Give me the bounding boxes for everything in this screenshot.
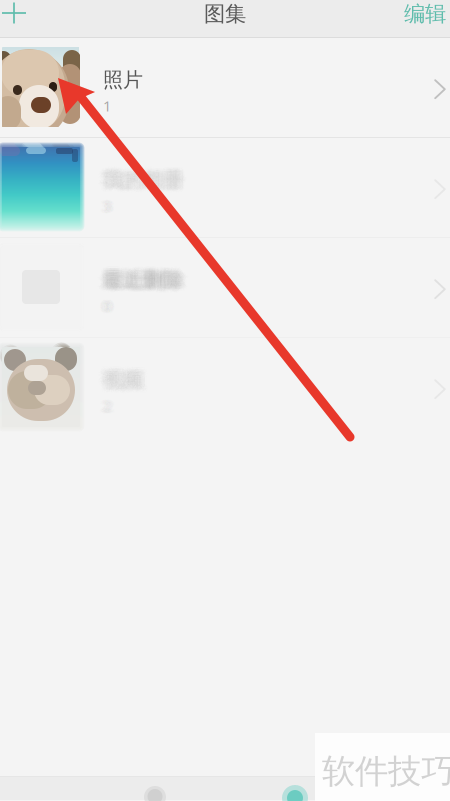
staticText: 最近删除 bbox=[110, 266, 190, 291]
staticText: 3 bbox=[102, 198, 110, 217]
staticText: 软件技巧 bbox=[322, 751, 450, 792]
staticText: 我的相册 bbox=[98, 171, 178, 196]
button[interactable]: 照片 bbox=[0, 38, 450, 137]
staticText: 2 bbox=[102, 396, 110, 415]
staticText: 最近删除 bbox=[108, 264, 188, 288]
staticText: 3 bbox=[106, 194, 114, 214]
staticText: 3 bbox=[100, 197, 108, 216]
staticText: 0 bbox=[99, 294, 107, 314]
staticText: 视频 bbox=[107, 371, 147, 396]
staticText: 0 bbox=[103, 294, 111, 314]
staticText: 视频 bbox=[104, 369, 144, 393]
staticText: 视频 bbox=[97, 363, 137, 388]
staticText: 3 bbox=[108, 197, 116, 216]
staticText: 2 bbox=[98, 395, 106, 415]
button[interactable]: New album bbox=[0, 0, 36, 38]
staticText: 2 bbox=[101, 393, 109, 413]
staticText: 我的相册 bbox=[96, 171, 176, 196]
staticText: 3 bbox=[108, 193, 116, 212]
staticText: 0 bbox=[101, 299, 109, 318]
staticText: 2 bbox=[108, 395, 116, 415]
button[interactable]: 编辑 bbox=[404, 0, 450, 38]
staticText: 视频 bbox=[112, 371, 152, 396]
staticText: 最近删除 bbox=[103, 269, 183, 293]
staticText: 3 bbox=[106, 193, 114, 212]
staticText: 视频 bbox=[112, 366, 152, 391]
staticText: 0 bbox=[105, 297, 113, 316]
staticText: 2 bbox=[97, 394, 105, 414]
staticText: 视频 bbox=[110, 365, 150, 389]
button[interactable]: 我的相册 bbox=[0, 138, 450, 237]
staticText: 最近删除 bbox=[111, 265, 191, 289]
staticText: 3 bbox=[102, 199, 110, 218]
button[interactable]: 视频 bbox=[0, 338, 450, 437]
staticText: 2 bbox=[108, 397, 116, 416]
staticText: 2 bbox=[105, 400, 113, 419]
staticText: 3 bbox=[103, 196, 111, 215]
staticText: 3 bbox=[108, 199, 116, 219]
staticText: 视频 bbox=[102, 363, 142, 388]
staticText: 最近删除 bbox=[96, 269, 176, 293]
staticText: 0 bbox=[100, 292, 108, 312]
staticText: 3 bbox=[102, 193, 110, 212]
staticText: 视频 bbox=[105, 363, 145, 388]
staticText: 3 bbox=[108, 195, 116, 215]
staticText: 2 bbox=[98, 394, 106, 414]
staticText: 3 bbox=[107, 196, 115, 215]
staticText: 3 bbox=[106, 197, 114, 216]
staticText: 我的相册 bbox=[102, 167, 182, 192]
button[interactable]: 最近删除 bbox=[0, 238, 450, 337]
staticText: 视频 bbox=[111, 367, 151, 392]
staticText: 视频 bbox=[94, 373, 134, 397]
staticText: 视频 bbox=[106, 363, 146, 388]
staticText: 2 bbox=[102, 398, 110, 417]
staticText: 视频 bbox=[101, 370, 141, 395]
staticText: 我的相册 bbox=[111, 166, 191, 191]
staticText: 视频 bbox=[111, 362, 151, 387]
staticText: 0 bbox=[109, 296, 117, 315]
staticText: 2 bbox=[101, 400, 109, 419]
staticText: 最近删除 bbox=[106, 262, 186, 287]
staticText: 我的相册 bbox=[95, 172, 175, 197]
staticText: 0 bbox=[100, 296, 108, 315]
staticText: 视频 bbox=[95, 365, 135, 389]
staticText: 0 bbox=[104, 296, 112, 315]
staticText: 2 bbox=[104, 394, 112, 414]
staticText: 我的相册 bbox=[102, 170, 182, 194]
staticText: 2 bbox=[98, 398, 106, 417]
staticText: 0 bbox=[109, 300, 117, 319]
staticText: 3 bbox=[104, 199, 112, 219]
staticText: 视频 bbox=[100, 365, 140, 389]
staticText: 0 bbox=[109, 295, 117, 315]
staticText: 视频 bbox=[112, 367, 152, 392]
staticText: 2 bbox=[101, 399, 109, 418]
staticText: 我的相册 bbox=[110, 164, 190, 188]
staticText: 0 bbox=[108, 298, 116, 317]
staticText: 视频 bbox=[98, 366, 138, 391]
staticText: 2 bbox=[105, 398, 113, 417]
staticText: 视频 bbox=[95, 373, 135, 397]
staticText: 最近删除 bbox=[102, 262, 182, 287]
staticText: 0 bbox=[107, 295, 115, 315]
staticText: 最近删除 bbox=[110, 273, 190, 297]
staticText: 我的相册 bbox=[110, 169, 190, 193]
staticText: 视频 bbox=[110, 371, 150, 396]
staticText: 2 bbox=[107, 400, 115, 419]
staticText: 3 bbox=[106, 198, 114, 217]
staticText: 视频 bbox=[107, 366, 147, 391]
staticText: 我的相册 bbox=[97, 171, 177, 196]
staticText: 2 bbox=[104, 399, 112, 418]
staticText: 0 bbox=[103, 292, 111, 312]
staticText: 0 bbox=[105, 298, 113, 317]
staticText: 我的相册 bbox=[98, 163, 178, 187]
staticText: 3 bbox=[105, 199, 113, 219]
staticText: 我的相册 bbox=[95, 163, 175, 187]
staticText: 最近删除 bbox=[104, 266, 184, 291]
staticText: 最近删除 bbox=[99, 273, 179, 297]
staticText: 3 bbox=[100, 195, 108, 215]
staticText: 3 bbox=[107, 199, 115, 219]
staticText: 视频 bbox=[95, 371, 135, 396]
